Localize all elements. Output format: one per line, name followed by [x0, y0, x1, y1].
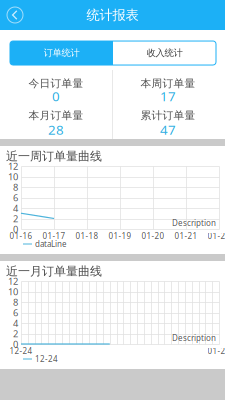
staticText: 12-24 [9, 345, 32, 356]
staticText: 6 [13, 191, 18, 204]
staticText: 2 [13, 212, 18, 225]
staticText: 01-19 [108, 230, 131, 241]
staticText: 12 [8, 275, 18, 287]
staticText: 0 [13, 223, 18, 235]
staticText: dataLine [35, 238, 67, 249]
staticText: 订单统计 [43, 47, 79, 59]
staticText: 01-18 [75, 230, 98, 241]
staticText: 12 [8, 160, 18, 172]
staticText: 2 [13, 327, 18, 340]
staticText: 近一周订单量曲线 [6, 149, 102, 163]
staticText: 10 [8, 170, 18, 183]
staticText: Description [172, 217, 216, 228]
staticText: 4 [13, 317, 18, 329]
staticText: 本月订单量 [28, 109, 83, 122]
staticText: 累计订单量 [140, 109, 195, 122]
staticText: 0 [52, 87, 60, 105]
staticText: 0 [13, 338, 18, 350]
button[interactable]: 收入统计 [113, 41, 216, 65]
button[interactable]: Back [2, 2, 28, 28]
staticText: 本周订单量 [140, 77, 195, 90]
staticText: 6 [13, 306, 18, 319]
staticText: 01-20 [141, 230, 164, 241]
staticText: 12-24 [35, 353, 58, 364]
staticText: 01-21 [174, 230, 197, 241]
staticText: 8 [13, 296, 18, 308]
staticText: 8 [13, 181, 18, 193]
button[interactable]: 订单统计 [10, 41, 113, 65]
staticText: 收入统计 [146, 47, 182, 59]
staticText: 01-17 [42, 230, 65, 241]
staticText: 今日订单量 [28, 77, 83, 90]
staticText: 01-16 [9, 230, 32, 241]
staticText: 17 [160, 87, 176, 105]
staticText: 01-22 [207, 230, 225, 241]
staticText: 4 [13, 202, 18, 214]
staticText: Description [172, 332, 216, 343]
staticText: 统计报表 [86, 7, 138, 23]
staticText: 01-22 [207, 345, 225, 356]
staticText: 近一月订单量曲线 [6, 264, 102, 278]
staticText: 47 [160, 121, 176, 138]
staticText: 28 [48, 121, 64, 138]
staticText: 10 [8, 285, 18, 298]
